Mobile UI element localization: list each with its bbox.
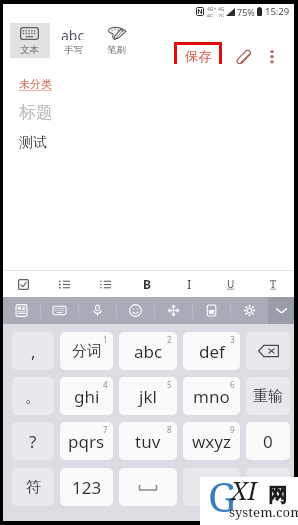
button[interactable]: mno [183,377,240,415]
staticText: 符 [26,478,41,497]
staticText: G [208,469,237,517]
button[interactable]: Bold [126,271,168,297]
button[interactable]: Clipboard [3,297,40,324]
staticText: 7 [103,424,108,435]
staticText: 5 [167,379,172,390]
button[interactable]: More options [261,46,283,68]
staticText: abc [134,340,163,363]
staticText: 4G+ [207,6,217,13]
button[interactable]: 中 [183,468,240,506]
staticText: , [31,340,36,363]
button[interactable]: Keyboard layout [41,297,78,324]
button[interactable] [246,332,290,370]
staticText: I [187,276,192,292]
staticText: pqrs [68,430,105,453]
button[interactable]: Move cursor [155,297,192,324]
staticText: def [199,340,225,363]
button[interactable]: 文本 [8,23,51,58]
staticText: U [227,277,235,291]
staticText: 2 [167,334,172,345]
staticText: 9 [230,424,235,435]
button[interactable]: jkl [119,377,177,415]
staticText: 0 [263,430,273,453]
button[interactable]: 123 [60,468,113,506]
button[interactable]: abc [51,23,94,58]
staticText: 未分类 [19,77,52,91]
staticText: 手写 [64,44,83,56]
staticText: 1 [103,334,108,345]
staticText: ? [29,430,37,453]
button[interactable]: Emoji [117,297,154,324]
button[interactable]: Bulleted list [44,271,85,297]
staticText: 123 [72,476,102,499]
button[interactable]: Voice input [79,297,116,324]
staticText: 笔刷 [107,44,126,56]
staticText: 标题 [19,102,53,123]
button[interactable]: Attach file [231,46,255,70]
staticText: 3 [230,334,235,345]
button[interactable]: 。 [12,377,54,415]
button[interactable]: Underline [210,271,252,297]
button[interactable]: Numbered list [85,271,126,297]
staticText: 测试 [19,134,47,152]
button[interactable]: , [12,332,54,370]
staticText: 4G [207,13,214,17]
button[interactable]: 0 [246,422,290,460]
button[interactable]: Settings [231,297,268,324]
staticText: 文本 [20,44,39,56]
staticText: 75% [237,6,255,18]
button[interactable]: abc [119,332,177,370]
button[interactable]: wxyz [183,422,240,460]
staticText: system.com [229,503,298,521]
button[interactable]: ? [12,422,54,460]
staticText: mno [193,385,230,408]
button[interactable]: One-handed mode [193,297,230,324]
staticText: 。 [25,386,42,407]
staticText: ghi [74,385,100,408]
staticText: 中 [204,478,219,497]
staticText: XI [231,473,257,507]
button[interactable]: 符 [12,468,54,506]
staticText: 分词 [72,342,102,361]
button[interactable]: 保存 [177,45,219,67]
staticText: 4G [218,6,225,13]
staticText: jkl [139,385,157,408]
button[interactable]: 笔刷 [94,23,137,58]
button[interactable]: tuv [119,422,177,460]
staticText: 重输 [253,387,283,406]
staticText: abc [61,26,85,40]
button[interactable] [119,468,177,506]
button[interactable]: Text colour [252,271,294,297]
button[interactable] [246,468,290,506]
staticText: 网 [268,484,287,508]
button[interactable]: def [183,332,240,370]
staticText: 15:29 [265,5,290,18]
staticText: 2G [218,13,225,17]
button[interactable]: pqrs [60,422,113,460]
staticText: 保存 [185,48,212,65]
staticText: 6 [230,379,235,390]
button[interactable]: 分词 [60,332,113,370]
staticText: tuv [135,430,161,453]
button[interactable]: Checklist [3,271,44,297]
staticText: B [143,276,151,292]
button[interactable]: Hide keyboard [268,297,294,324]
staticText: wxyz [192,430,232,453]
button[interactable]: ghi [60,377,113,415]
button[interactable]: Italic [168,271,210,297]
staticText: 8 [167,424,172,435]
staticText: T [270,277,277,291]
staticText: 4 [103,379,108,390]
button[interactable]: 重输 [246,377,290,415]
